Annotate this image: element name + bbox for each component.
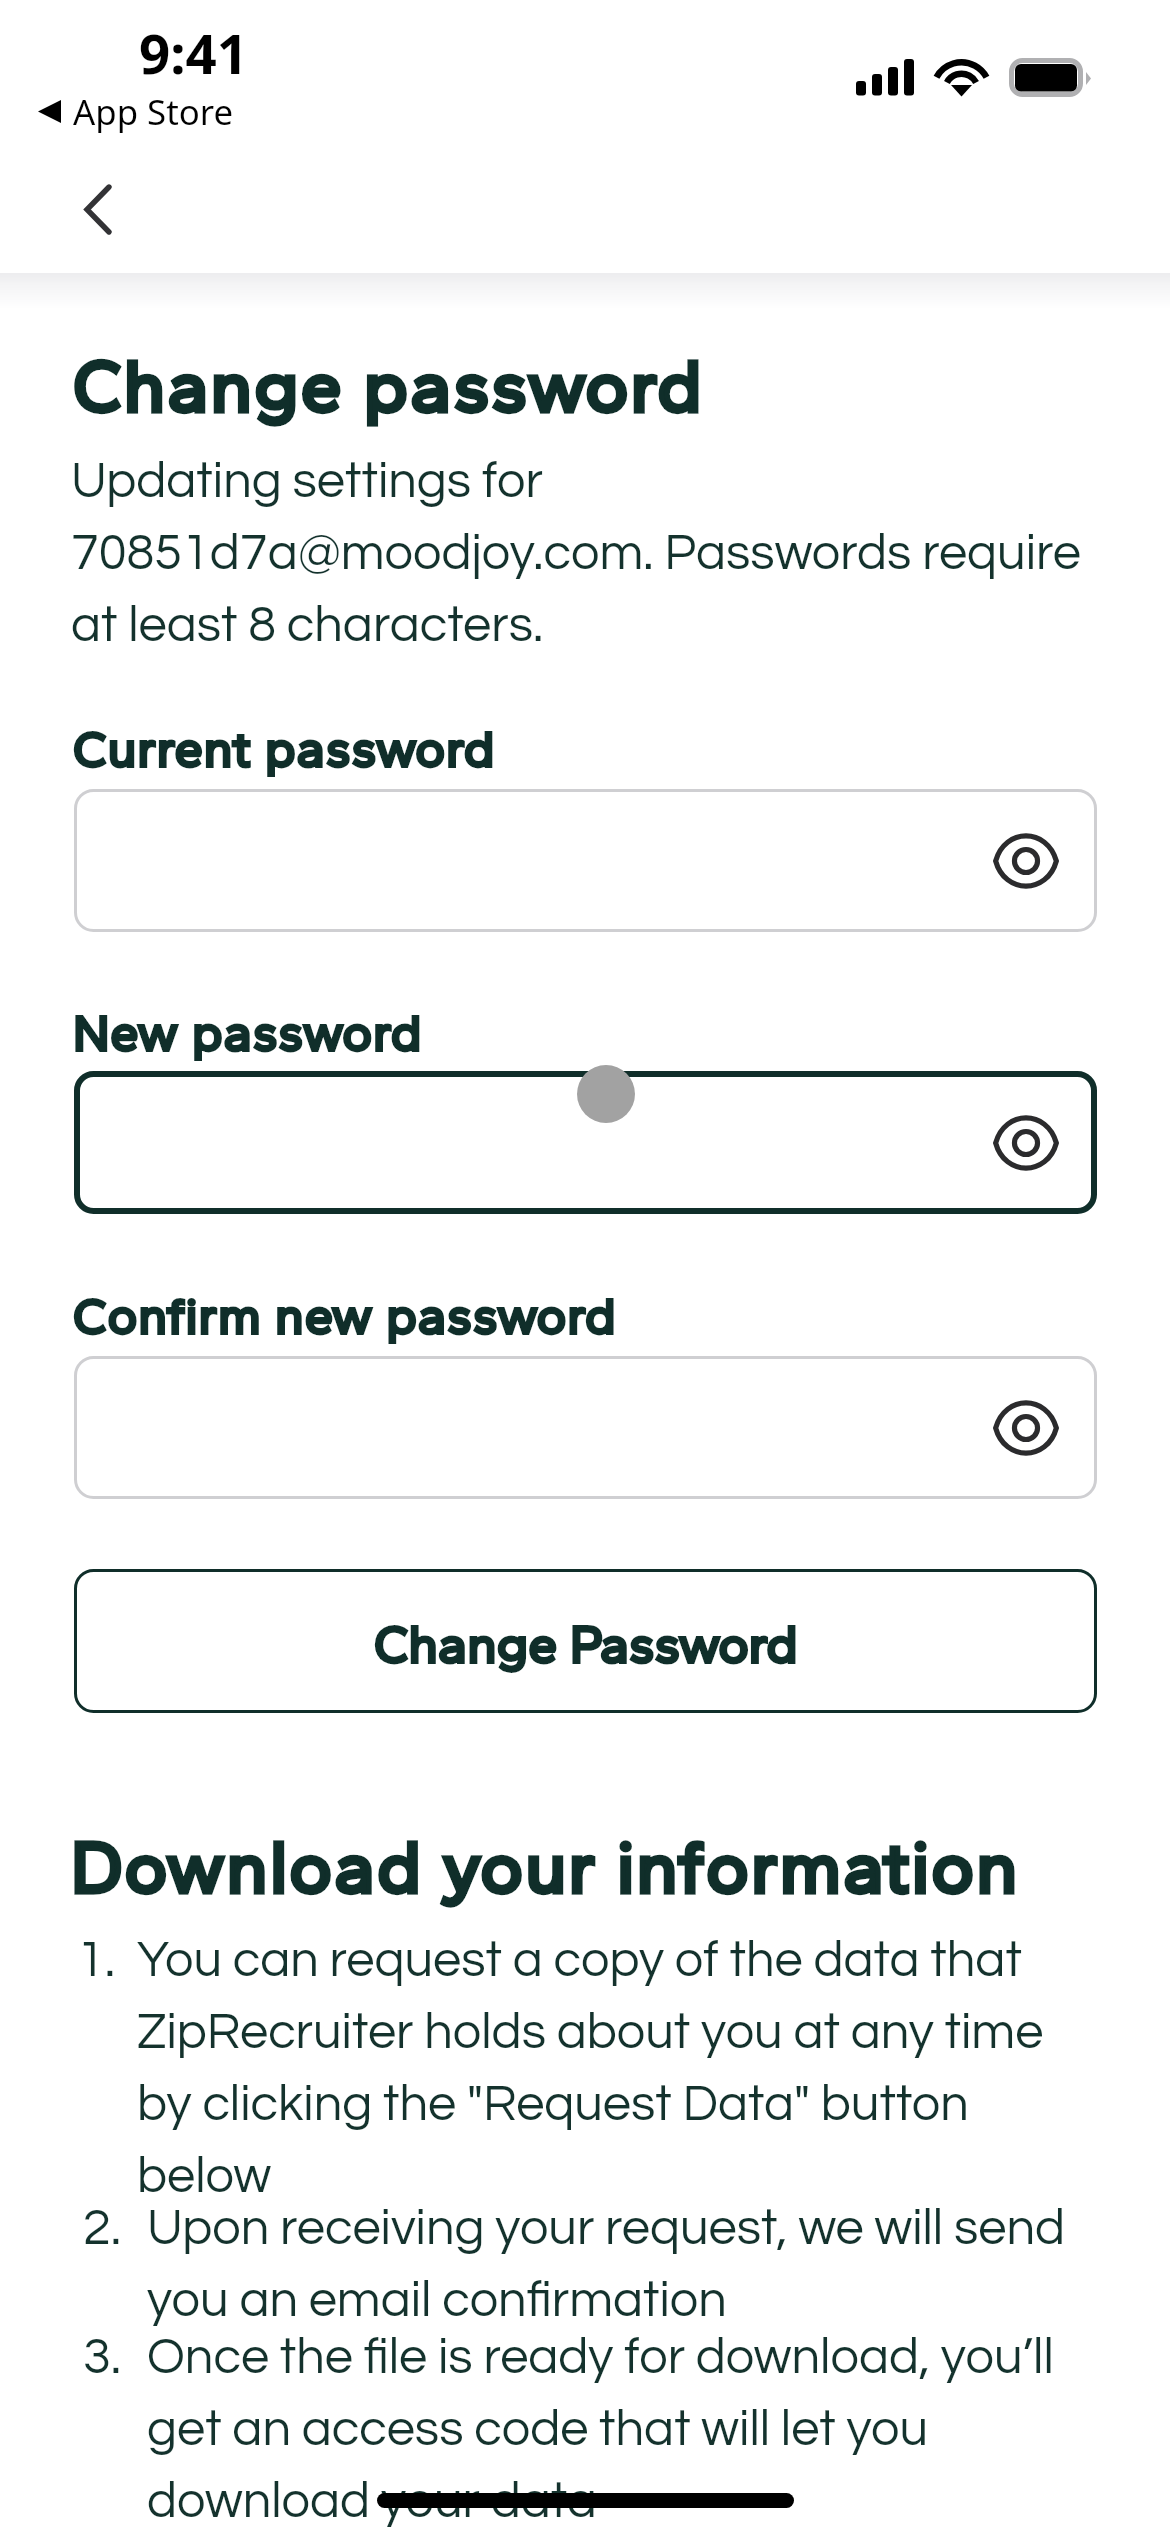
- staticText: 1.: [77, 1919, 116, 1991]
- staticText: Change Password: [374, 1605, 798, 1677]
- staticText: Updating settings for 70851d7a@moodjoy.c…: [71, 440, 1115, 656]
- button[interactable]: Back: [42, 154, 153, 265]
- button[interactable]: Show password: [975, 810, 1077, 912]
- staticText: New password: [73, 1000, 423, 1063]
- staticText: 3.: [83, 2316, 122, 2388]
- staticText: Upon receiving your request, we will sen…: [147, 2187, 1101, 2331]
- button[interactable]: Show password: [74, 1356, 1097, 1499]
- button[interactable]: Show password: [74, 789, 1097, 932]
- staticText: Current password: [73, 716, 496, 779]
- button[interactable]: Show password: [74, 1071, 1097, 1214]
- staticText: Change password: [73, 337, 704, 430]
- staticText: Confirm new password: [73, 1283, 617, 1346]
- button[interactable]: Change Password: [74, 1569, 1097, 1713]
- staticText: 2.: [83, 2187, 122, 2259]
- staticText: Download your information: [71, 1818, 1020, 1911]
- staticText: Current password: [73, 716, 496, 779]
- button[interactable]: Show password: [975, 1092, 1077, 1194]
- staticText: You can request a copy of the data that …: [137, 1919, 1091, 2207]
- staticText: App Store: [73, 92, 234, 134]
- staticText: Confirm new password: [73, 1283, 617, 1346]
- staticText: Change Password: [374, 1605, 798, 1677]
- staticText: Once the file is ready for download, you…: [147, 2316, 1101, 2532]
- staticText: New password: [73, 1000, 423, 1063]
- staticText: Download your information: [71, 1818, 1020, 1911]
- staticText: 9:41: [139, 22, 249, 88]
- button[interactable]: Show password: [975, 1377, 1077, 1479]
- staticText: Change password: [73, 337, 704, 430]
